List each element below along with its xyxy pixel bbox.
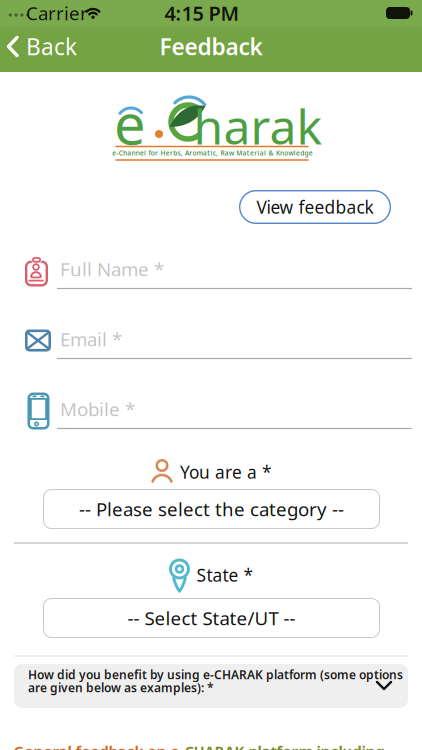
staticText: Mobile * <box>60 397 135 421</box>
staticText: Carrier <box>26 1 88 25</box>
button[interactable]: -- Please select the category -- <box>43 489 380 529</box>
button[interactable]: -- Select State/UT -- <box>43 598 380 638</box>
button[interactable]: Mobile * <box>0 389 412 429</box>
staticText: -- Select State/UT -- <box>127 606 295 630</box>
button[interactable]: Full Name * <box>0 249 412 289</box>
staticText: General feedback on e- <box>13 741 184 750</box>
staticText: are given below as examples): * <box>28 679 214 695</box>
staticText: 4:15 PM <box>164 0 239 26</box>
button[interactable]: How did you benefit by using e-CHARAK pl… <box>14 664 408 708</box>
button[interactable]: Email * <box>0 319 412 359</box>
staticText: Email * <box>60 327 122 351</box>
staticText: e-Channel for Herbs, Aromatic, Raw Mater… <box>112 149 313 157</box>
staticText: CHARAK platform including <box>184 741 384 750</box>
staticText: Feedback <box>159 31 262 61</box>
staticText: View feedback <box>256 195 373 218</box>
staticText: Full Name * <box>60 257 164 281</box>
button[interactable]: View feedback <box>239 190 391 224</box>
staticText: Back <box>26 31 77 61</box>
button[interactable]: Back <box>7 31 77 61</box>
staticText: How did you benefit by using e-CHARAK pl… <box>28 666 403 682</box>
staticText: You are a * <box>180 460 272 483</box>
staticText: -- Please select the category -- <box>79 497 344 521</box>
staticText: harak <box>193 94 322 158</box>
staticText: State * <box>196 563 253 586</box>
staticText: e <box>114 86 146 160</box>
